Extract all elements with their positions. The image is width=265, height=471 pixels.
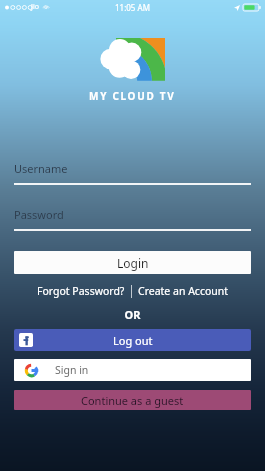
staticText: Forgot Password?: [37, 284, 125, 298]
button[interactable]: Sign in: [14, 359, 251, 381]
staticText: Log out: [113, 333, 153, 348]
staticText: 11:05 AM: [115, 2, 150, 13]
staticText: Create an Account: [138, 284, 229, 298]
staticText: Continue as a guest: [81, 393, 184, 408]
staticText: OR: [14, 307, 251, 322]
staticText: Jio: [31, 2, 39, 12]
button[interactable]: Login: [14, 251, 251, 274]
button[interactable]: Create an Account: [132, 282, 235, 300]
button[interactable]: Forgot Password?: [31, 282, 131, 300]
staticText: MY CLOUD TV: [89, 89, 176, 103]
button[interactable]: Log out: [14, 329, 251, 351]
staticText: Password: [14, 207, 64, 222]
other: Facebook: [19, 333, 33, 347]
button[interactable]: Continue as a guest: [14, 390, 251, 410]
staticText: Sign in: [55, 363, 89, 377]
staticText: Login: [117, 255, 149, 271]
button[interactable]: Password: [14, 207, 251, 231]
staticText: Username: [14, 161, 68, 176]
button[interactable]: Username: [14, 161, 251, 185]
